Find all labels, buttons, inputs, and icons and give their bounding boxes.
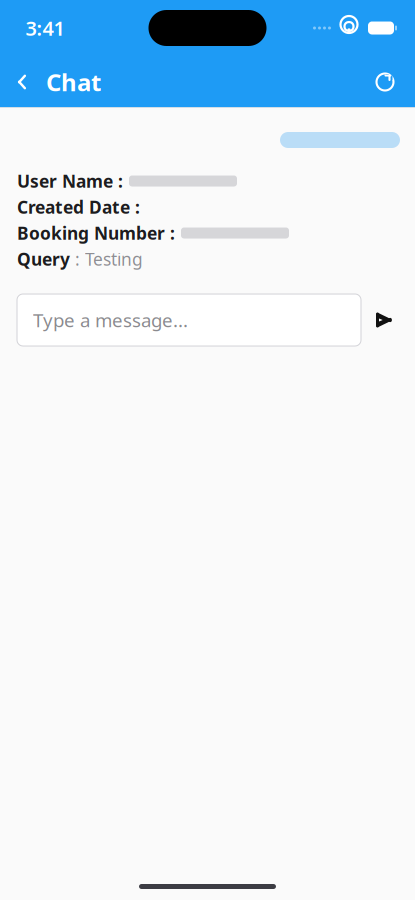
staticText: Booking Number : xyxy=(17,221,175,244)
staticText: : xyxy=(70,247,85,270)
staticText: Query xyxy=(17,247,70,270)
staticText: Chat xyxy=(46,66,101,98)
staticText: Created Date : xyxy=(17,195,140,218)
staticText: 3:41 xyxy=(25,15,64,41)
button[interactable]: Back xyxy=(0,60,44,104)
staticText: Type a message... xyxy=(33,308,188,332)
staticText: User Name : xyxy=(17,169,123,192)
button[interactable]: Refresh xyxy=(363,60,407,104)
button[interactable]: Send xyxy=(361,294,407,346)
staticText: Testing xyxy=(85,247,143,270)
button[interactable]: Type a message... xyxy=(17,294,361,346)
